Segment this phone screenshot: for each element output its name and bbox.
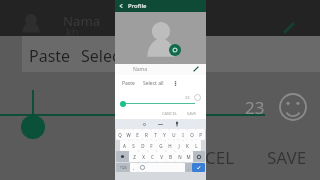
staticText: SAVE [187,111,197,116]
button[interactable]: O [187,129,196,140]
button[interactable]: CANCEL [160,111,179,116]
staticText: H [168,143,172,149]
staticText: ?123 [120,166,127,170]
staticText: W [126,132,131,138]
staticText: . [188,165,190,171]
button[interactable]: U [169,129,178,140]
button[interactable]: D [138,140,147,151]
button[interactable]: T [151,129,160,140]
staticText: R [145,132,148,138]
button[interactable]: W [124,129,133,140]
button[interactable]: C [148,151,157,162]
button[interactable]: Emoji [138,163,146,172]
button[interactable]: Emoji [194,94,201,101]
staticText: G [159,143,163,149]
staticText: CANCEL [162,111,177,116]
button[interactable]: F [147,140,156,151]
button[interactable]: Back [115,0,206,12]
staticText: T [154,132,157,138]
button[interactable]: Back [118,3,124,9]
button[interactable]: B [166,151,175,162]
button[interactable]: G [156,140,165,151]
staticText: B [169,154,172,160]
button[interactable]: J [174,140,183,151]
staticText: Paste [29,45,71,67]
staticText: L [195,143,198,149]
staticText: S [132,143,135,149]
staticText: CEL [205,146,235,169]
staticText: Select all [143,80,164,87]
staticText: X [142,154,145,160]
button[interactable]: M [184,151,193,162]
staticText: I [182,132,184,138]
staticText: A [123,143,126,149]
staticText: 23 [185,95,190,100]
button[interactable]: Backspace [193,151,205,162]
staticText: O [190,132,194,138]
button[interactable]: H [165,140,174,151]
staticText: C [151,154,154,160]
staticText: J [178,143,180,149]
staticText: Nama [133,66,148,73]
staticText: P [199,132,202,138]
button[interactable]: A [120,140,129,151]
button[interactable]: N [175,151,184,162]
staticText: , [133,165,135,171]
staticText: U [172,132,176,138]
button[interactable]: Q [116,129,124,140]
button[interactable]: X [139,151,148,162]
staticText: SAVE [267,146,307,169]
button[interactable]: Expand [157,121,164,128]
button[interactable]: . [185,163,192,172]
button[interactable]: Paste [122,80,135,87]
button[interactable]: Z [129,151,139,162]
button[interactable]: Shift [116,151,129,162]
button[interactable]: SAVE [185,111,199,116]
staticText: Select [81,45,126,67]
button[interactable]: Enter [192,163,205,172]
staticText: Z [133,154,136,160]
staticText: kh [66,24,79,39]
button[interactable]: Change photo [169,44,181,56]
button[interactable]: , [130,163,138,172]
staticText: D [141,143,145,149]
staticText: F [150,143,153,149]
staticText: 23 [245,96,265,119]
staticText: Y [163,132,166,138]
staticText: Profile [128,2,147,10]
staticText: Paste [122,80,135,87]
staticText: Q [118,132,122,138]
button[interactable]: More options [172,80,179,87]
staticText: V [160,154,163,160]
staticText: K [186,143,189,149]
button[interactable]: S [129,140,138,151]
button[interactable]: Select all [143,80,164,87]
staticText: N [178,154,182,160]
staticText: Nama [63,12,101,30]
button[interactable]: I [178,129,187,140]
button[interactable]: L [192,140,201,151]
button[interactable]: V [157,151,166,162]
button[interactable]: Y [160,129,169,140]
button[interactable]: Voice input [174,121,180,127]
button[interactable]: ?123 [116,163,130,172]
button[interactable]: R [142,129,151,140]
staticText: E [136,132,139,138]
staticText: M [186,154,191,160]
button[interactable]: K [183,140,192,151]
button[interactable]: P [196,129,205,140]
button[interactable]: Settings [142,122,147,127]
button[interactable]: E [133,129,142,140]
